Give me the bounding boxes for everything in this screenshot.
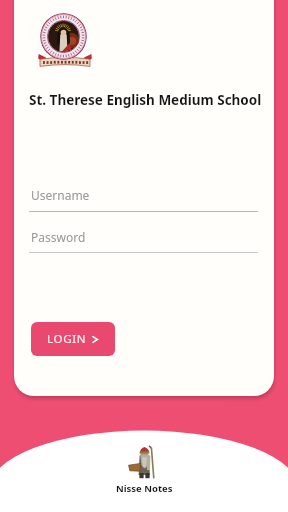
button[interactable]: LOGIN <box>31 322 115 356</box>
staticText: Password <box>31 229 86 245</box>
button[interactable]: Nisse Notes <box>104 437 185 503</box>
button[interactable]: Username <box>29 186 258 211</box>
button[interactable]: Password <box>29 228 258 253</box>
staticText: St. Therese English Medium School <box>29 91 262 109</box>
staticText: Username <box>31 187 90 203</box>
staticText: LOGIN <box>47 331 87 347</box>
staticText: Nisse Notes <box>116 482 173 495</box>
